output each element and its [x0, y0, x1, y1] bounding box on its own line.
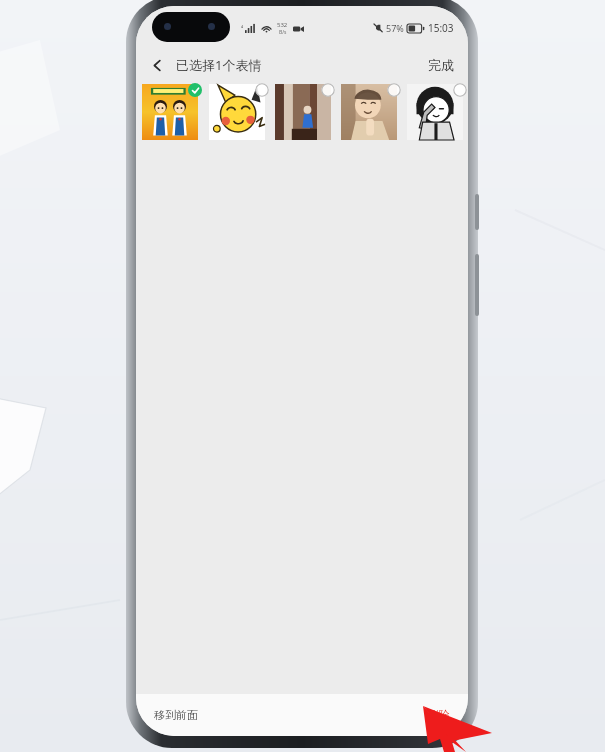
staticText: 57% — [386, 22, 404, 34]
button[interactable]: 完成 — [414, 51, 468, 79]
staticText: B/s — [279, 29, 287, 36]
button[interactable]: 表情 2 — [203, 82, 270, 144]
button[interactable]: 移到前面 — [136, 698, 216, 732]
staticText: 15:03 — [428, 21, 454, 35]
staticText: ⁴ — [241, 25, 244, 33]
staticText: 532 — [277, 21, 288, 29]
button[interactable]: 表情 4 — [336, 82, 402, 144]
button[interactable]: 已选中表情 — [136, 82, 203, 144]
staticText: 删除 — [428, 708, 450, 722]
staticText: 已选择1个表情 — [176, 56, 262, 74]
staticText: 完成 — [428, 57, 454, 73]
button[interactable]: 表情 5 — [402, 82, 468, 144]
button[interactable]: 返回 — [142, 50, 172, 80]
button[interactable]: 表情 3 — [270, 82, 336, 144]
staticText: 移到前面 — [154, 708, 198, 722]
button[interactable]: 删除 — [410, 698, 468, 732]
